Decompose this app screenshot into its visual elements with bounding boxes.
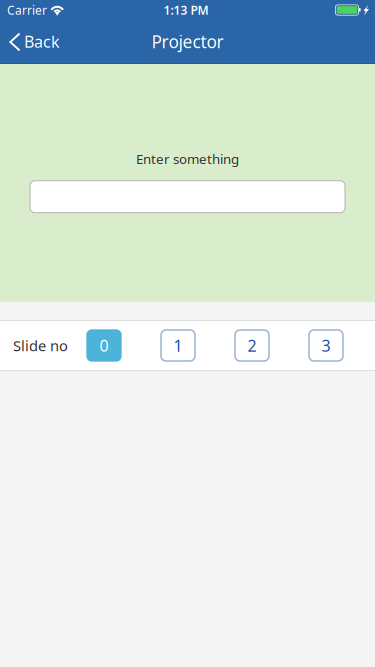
staticText: 3 <box>321 335 330 356</box>
staticText: 0 <box>99 335 108 356</box>
button[interactable]: 3 <box>309 330 343 361</box>
staticText: 1:13 PM <box>163 2 208 18</box>
button[interactable]: 0 <box>87 330 121 361</box>
button[interactable]: 1 <box>161 330 195 361</box>
staticText: Projector <box>151 30 223 53</box>
button[interactable]: 2 <box>235 330 269 361</box>
staticText: 2 <box>247 335 256 356</box>
staticText: Carrier <box>7 2 47 18</box>
button[interactable]: Back <box>0 19 110 63</box>
staticText: Back <box>24 31 60 52</box>
staticText: Enter something <box>136 150 239 168</box>
staticText: Slide no <box>13 336 68 355</box>
staticText: 1 <box>173 335 182 356</box>
